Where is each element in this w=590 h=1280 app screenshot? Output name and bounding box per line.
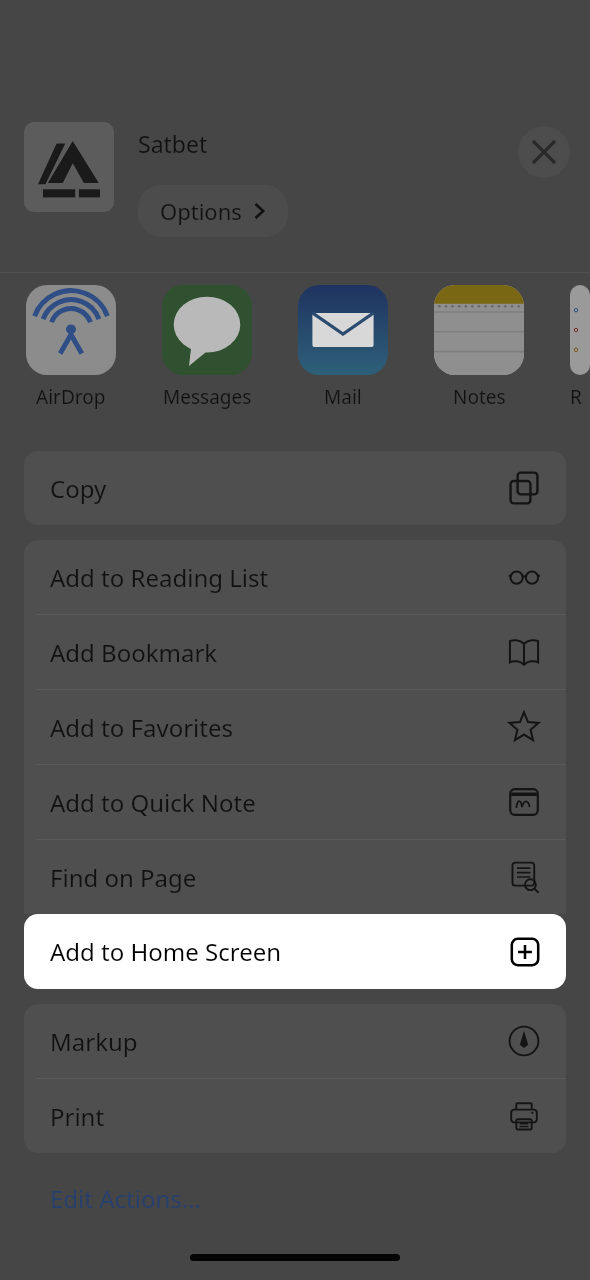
staticText: Edit Actions... xyxy=(50,1182,202,1215)
button[interactable]: Messages xyxy=(162,273,252,410)
staticText: Markup xyxy=(50,1025,508,1058)
button[interactable]: Options xyxy=(138,185,288,237)
button[interactable]: Add to Reading List xyxy=(24,540,566,614)
staticText: Add to Favorites xyxy=(50,711,508,744)
button[interactable]: Mail xyxy=(298,273,388,410)
button[interactable]: Notes xyxy=(434,273,524,410)
button[interactable]: AirDrop xyxy=(26,273,116,410)
button[interactable]: Add Bookmark xyxy=(24,615,566,689)
staticText: Add to Home Screen xyxy=(50,935,510,968)
button[interactable]: Edit Actions... xyxy=(24,1167,566,1229)
staticText: Notes xyxy=(453,384,506,410)
button[interactable]: Add to Home Screen xyxy=(24,914,566,989)
button[interactable]: Add to Quick Note xyxy=(24,765,566,839)
button[interactable]: Find on Page xyxy=(24,840,566,914)
staticText: AirDrop xyxy=(36,384,106,410)
staticText: Satbet xyxy=(138,128,208,159)
staticText: Find on Page xyxy=(50,861,508,894)
button[interactable]: Close xyxy=(518,126,570,178)
button[interactable]: Re xyxy=(570,273,590,410)
staticText: Options xyxy=(160,196,242,226)
staticText: Re xyxy=(570,384,590,410)
button[interactable]: Print xyxy=(24,1079,566,1153)
staticText: Mail xyxy=(324,384,362,410)
button[interactable]: Add to Favorites xyxy=(24,690,566,764)
staticText: Add to Quick Note xyxy=(50,786,508,819)
button[interactable]: Markup xyxy=(24,1004,566,1078)
staticText: Messages xyxy=(163,384,252,410)
staticText: Add Bookmark xyxy=(50,636,508,669)
staticText: Copy xyxy=(50,472,508,505)
button[interactable]: Copy xyxy=(24,451,566,525)
staticText: Print xyxy=(50,1100,508,1133)
staticText: Add to Reading List xyxy=(50,561,508,594)
